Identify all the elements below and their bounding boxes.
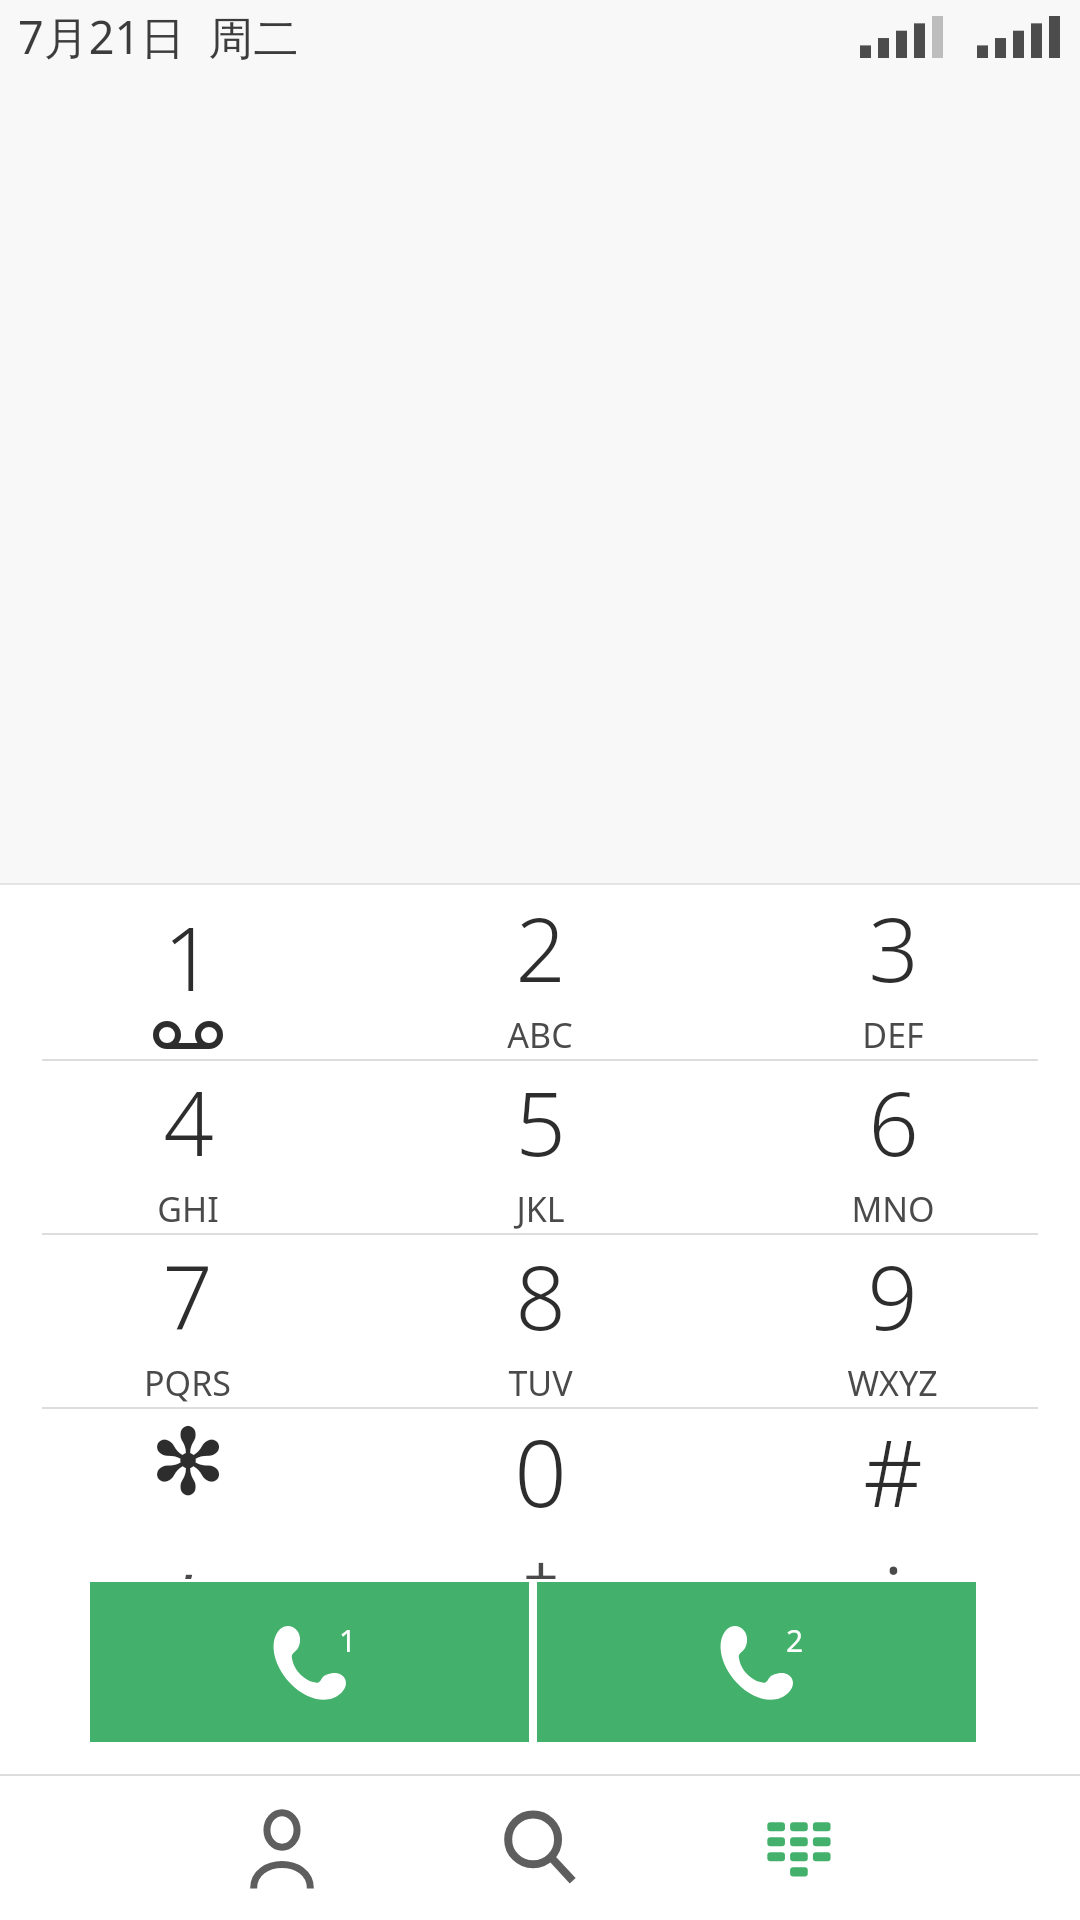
- button[interactable]: 2: [375, 887, 705, 1059]
- button[interactable]: 5: [375, 1061, 705, 1233]
- button[interactable]: 0: [375, 1409, 705, 1579]
- button[interactable]: 7: [0, 1235, 375, 1407]
- button[interactable]: 4: [0, 1061, 375, 1233]
- staticText: TUV: [508, 1360, 573, 1406]
- staticText: 6: [868, 1062, 919, 1182]
- staticText: MNO: [851, 1186, 935, 1232]
- button[interactable]: 3: [705, 887, 1080, 1059]
- staticText: 5: [515, 1062, 566, 1182]
- button[interactable]: Dialpad: [727, 1778, 867, 1918]
- staticText: GHI: [157, 1186, 219, 1232]
- button[interactable]: Contacts: [212, 1778, 352, 1918]
- staticText: 1: [163, 897, 214, 1017]
- button[interactable]: Call using SIM 1: [90, 1582, 529, 1742]
- staticText: WXYZ: [847, 1360, 938, 1406]
- staticText: PQRS: [144, 1360, 231, 1406]
- staticText: 4: [163, 1062, 214, 1182]
- staticText: 1: [339, 1620, 357, 1661]
- staticText: 7月21日 周二: [18, 6, 299, 67]
- staticText: DEF: [862, 1012, 924, 1058]
- button[interactable]: 6: [705, 1061, 1080, 1233]
- staticText: ABC: [507, 1012, 573, 1058]
- staticText: ;: [885, 1534, 902, 1579]
- button[interactable]: #: [705, 1409, 1080, 1579]
- staticText: 9: [867, 1236, 918, 1356]
- staticText: ✻: [149, 1409, 227, 1516]
- staticText: 2: [515, 888, 566, 1008]
- button[interactable]: Search: [470, 1778, 610, 1918]
- staticText: 0: [514, 1409, 567, 1534]
- staticText: 2: [786, 1620, 804, 1661]
- button[interactable]: 1: [0, 887, 375, 1059]
- button[interactable]: 9: [705, 1235, 1080, 1407]
- staticText: +: [523, 1534, 559, 1579]
- staticText: 3: [868, 888, 919, 1008]
- staticText: JKL: [516, 1186, 565, 1232]
- staticText: 7: [162, 1236, 213, 1356]
- staticText: #: [863, 1409, 923, 1534]
- button[interactable]: Call using SIM 2: [537, 1582, 976, 1742]
- button[interactable]: 8: [375, 1235, 705, 1407]
- staticText: 8: [515, 1236, 566, 1356]
- button[interactable]: ✻: [0, 1409, 375, 1579]
- staticText: ,: [180, 1516, 197, 1579]
